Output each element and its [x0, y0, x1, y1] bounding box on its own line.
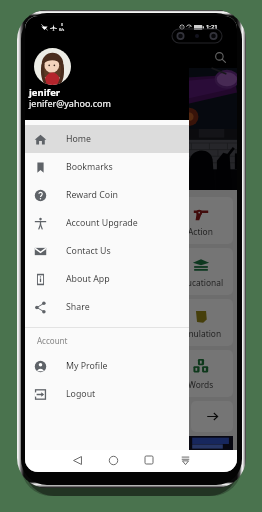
button[interactable]: Account Upgrade [25, 209, 189, 237]
staticText: Share [66, 301, 90, 313]
staticText: Home [66, 133, 92, 145]
button[interactable]: Contact Us [25, 237, 189, 265]
button[interactable]: Reward Coin [25, 181, 189, 209]
staticText: Words [188, 379, 214, 390]
button[interactable]: Music [99, 350, 164, 397]
staticText: 0 [61, 22, 64, 27]
staticText: Casual [49, 328, 76, 339]
button[interactable]: Casual [29, 299, 95, 346]
staticText: Account [37, 335, 68, 346]
button[interactable]: Board [99, 299, 164, 346]
staticText: Contact Us [66, 245, 111, 257]
staticText: Educational [177, 277, 224, 288]
button[interactable]: Educational [168, 248, 233, 295]
staticText: K/s [59, 27, 65, 32]
staticText: Bookmarks [66, 161, 113, 173]
button[interactable]: Home [103, 450, 123, 470]
button[interactable]: Puzzle [29, 197, 95, 244]
button[interactable]: My Profile [25, 352, 189, 380]
staticText: jenifer@yahoo.com [29, 97, 111, 109]
button[interactable]: Logout [25, 380, 189, 408]
button[interactable]: Sports [99, 248, 164, 295]
staticText: Racing [49, 277, 76, 288]
staticText: 1:21 [206, 23, 218, 31]
staticText: Logout [66, 388, 96, 400]
staticText: Simulation [179, 328, 222, 339]
staticText: jenifer [29, 86, 61, 99]
button[interactable]: Share [25, 293, 189, 321]
button[interactable]: Arcade [99, 197, 164, 244]
button[interactable]: Words [168, 350, 233, 397]
button[interactable]: Home [25, 125, 189, 153]
button[interactable]: Back [67, 450, 87, 470]
staticText: My Profile [66, 360, 108, 372]
button[interactable]: About App [25, 265, 189, 293]
button[interactable]: Card [29, 350, 95, 397]
button[interactable]: Action [168, 197, 233, 244]
button[interactable]: Next page [191, 401, 233, 432]
staticText: Account Upgrade [66, 217, 138, 229]
staticText: About App [66, 273, 110, 285]
staticText: Action [188, 226, 213, 237]
button[interactable]: Search [211, 48, 229, 66]
button[interactable]: Downloads [175, 450, 195, 470]
button[interactable]: Simulation [168, 299, 233, 346]
staticText: Reward Coin [66, 189, 118, 201]
button[interactable]: Racing [29, 248, 95, 295]
button[interactable]: Recent apps [139, 450, 159, 470]
button[interactable]: Bookmarks [25, 153, 189, 181]
